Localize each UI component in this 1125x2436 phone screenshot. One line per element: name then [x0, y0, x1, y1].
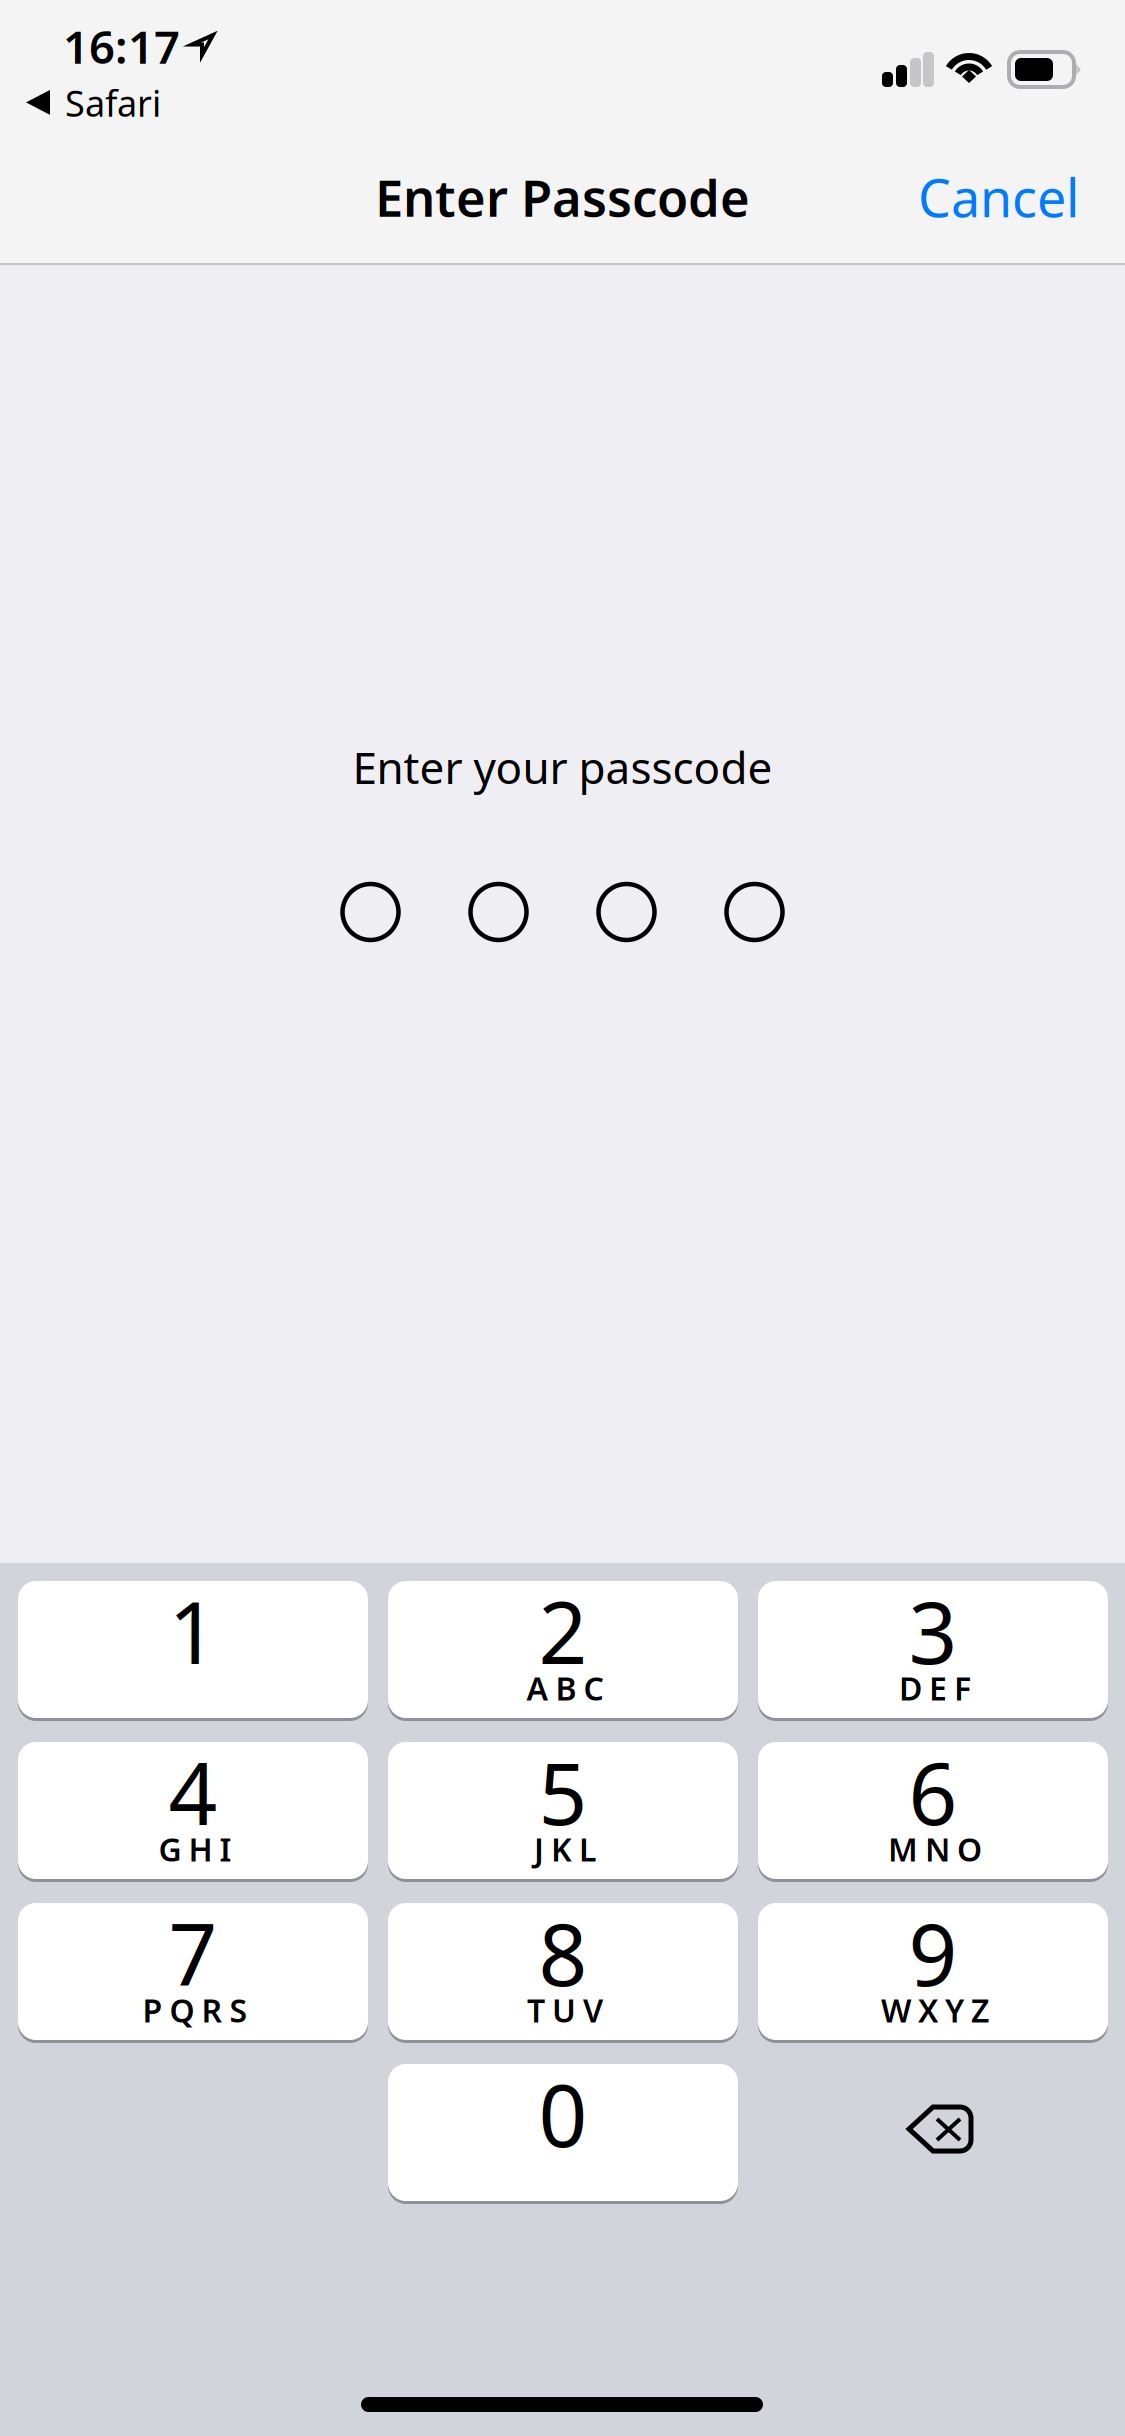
staticText: Enter your passcode: [352, 738, 772, 796]
staticText: 9: [908, 1896, 957, 2010]
staticText: JKL: [534, 1828, 596, 1870]
button[interactable]: 0: [388, 2064, 738, 2204]
staticText: 8: [538, 1896, 587, 2010]
staticText: MNO: [888, 1828, 982, 1870]
button[interactable]: 1: [18, 1581, 368, 1721]
staticText: 1: [168, 1574, 217, 1688]
staticText: WXYZ: [881, 1989, 989, 2031]
button[interactable]: 4: [18, 1742, 368, 1882]
button[interactable]: 9: [758, 1903, 1108, 2043]
button[interactable]: 6: [758, 1742, 1108, 1882]
staticText: 16:17: [63, 16, 180, 76]
button[interactable]: 8: [388, 1903, 738, 2043]
staticText: PQRS: [142, 1989, 247, 2031]
staticText: 2: [538, 1574, 587, 1688]
button[interactable]: Delete: [758, 2064, 1108, 2204]
staticText: Enter Passcode: [375, 163, 750, 231]
staticText: 7: [168, 1896, 217, 2010]
staticText: 4: [168, 1735, 217, 1849]
staticText: GHI: [158, 1828, 231, 1870]
button[interactable]: 2: [388, 1581, 738, 1721]
button[interactable]: Cancel: [876, 153, 1079, 241]
staticText: Safari: [65, 79, 161, 127]
button[interactable]: 3: [758, 1581, 1108, 1721]
staticText: 3: [908, 1574, 957, 1688]
button[interactable]: 7: [18, 1903, 368, 2043]
button[interactable]: Safari: [25, 79, 161, 127]
staticText: 6: [908, 1735, 957, 1849]
button[interactable]: 5: [388, 1742, 738, 1882]
staticText: 0: [538, 2057, 587, 2171]
staticText: DEF: [899, 1667, 971, 1709]
staticText: Cancel: [918, 162, 1079, 232]
staticText: 5: [538, 1735, 587, 1849]
staticText: ABC: [526, 1667, 603, 1709]
staticText: TUV: [527, 1989, 603, 2031]
